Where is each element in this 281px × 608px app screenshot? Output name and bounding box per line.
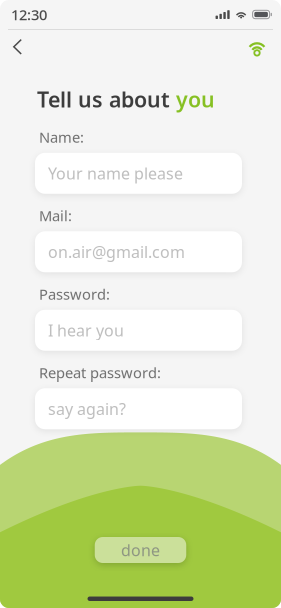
staticText: Name: [39,127,84,147]
button[interactable]: done [95,537,186,563]
staticText: Repeat password: [39,363,161,382]
staticText: Password: [39,284,110,304]
staticText: done [121,539,160,561]
staticText: Tell us about [37,85,176,113]
staticText: say again? [48,398,126,419]
staticText: I hear you [48,320,124,341]
staticText: 12:30 [11,5,47,24]
staticText: Your name please [48,163,183,184]
button[interactable]: Wi-Fi [234,30,281,64]
staticText: Mail: [39,206,72,225]
staticText: you [176,85,215,113]
staticText: on.air@gmail.com [48,241,185,262]
button[interactable]: Back [0,30,35,64]
